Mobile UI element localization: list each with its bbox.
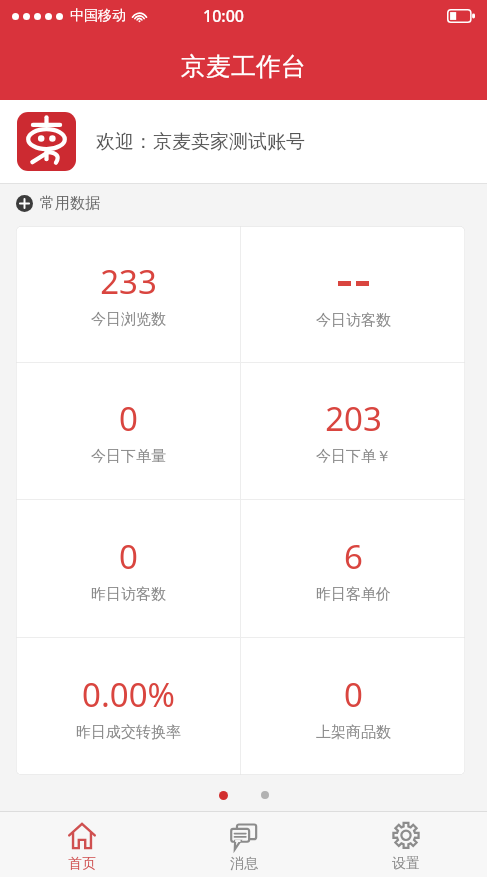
- button[interactable]: 0: [16, 500, 240, 637]
- button[interactable]: Messages: [163, 812, 325, 877]
- staticText: 京麦工作台: [181, 51, 306, 82]
- staticText: 上架商品数: [316, 723, 391, 742]
- button[interactable]: Add data: [0, 184, 487, 222]
- button[interactable]: 今日访客数: [241, 226, 465, 362]
- button[interactable]: 欢迎：京麦卖家测试账号: [0, 100, 487, 183]
- staticText: 今日下单量: [91, 447, 166, 466]
- staticText: 首页: [68, 855, 96, 873]
- staticText: 欢迎：京麦卖家测试账号: [96, 130, 305, 154]
- staticText: 0.00%: [82, 672, 175, 717]
- other: Settings: [390, 820, 422, 852]
- staticText: 消息: [230, 855, 258, 873]
- staticText: 昨日成交转换率: [76, 723, 181, 742]
- button[interactable]: 6: [241, 500, 465, 637]
- staticText: 设置: [392, 855, 420, 873]
- staticText: 10:00: [203, 5, 244, 27]
- staticText: 常用数据: [40, 194, 100, 213]
- button[interactable]: 0: [16, 363, 240, 499]
- other: Messages: [228, 820, 260, 852]
- button[interactable]: Home: [0, 812, 163, 877]
- staticText: 6: [344, 534, 363, 579]
- staticText: 中国移动: [70, 7, 126, 25]
- staticText: 233: [100, 259, 157, 304]
- staticText: 0: [119, 534, 138, 579]
- staticText: 昨日客单价: [316, 585, 391, 604]
- staticText: 203: [325, 396, 382, 441]
- staticText: 0: [344, 672, 363, 717]
- button[interactable]: 203: [241, 363, 465, 499]
- button[interactable]: Settings: [325, 812, 487, 877]
- staticText: 0: [119, 396, 138, 441]
- staticText: 今日浏览数: [91, 310, 166, 329]
- staticText: 今日下单￥: [316, 447, 391, 466]
- staticText: 今日访客数: [316, 311, 391, 330]
- button[interactable]: 0: [241, 638, 465, 775]
- other: Add data: [16, 195, 33, 212]
- staticText: 昨日访客数: [91, 585, 166, 604]
- button[interactable]: 233: [16, 226, 240, 362]
- button[interactable]: 0.00%: [16, 638, 240, 775]
- other: Home: [66, 820, 98, 852]
